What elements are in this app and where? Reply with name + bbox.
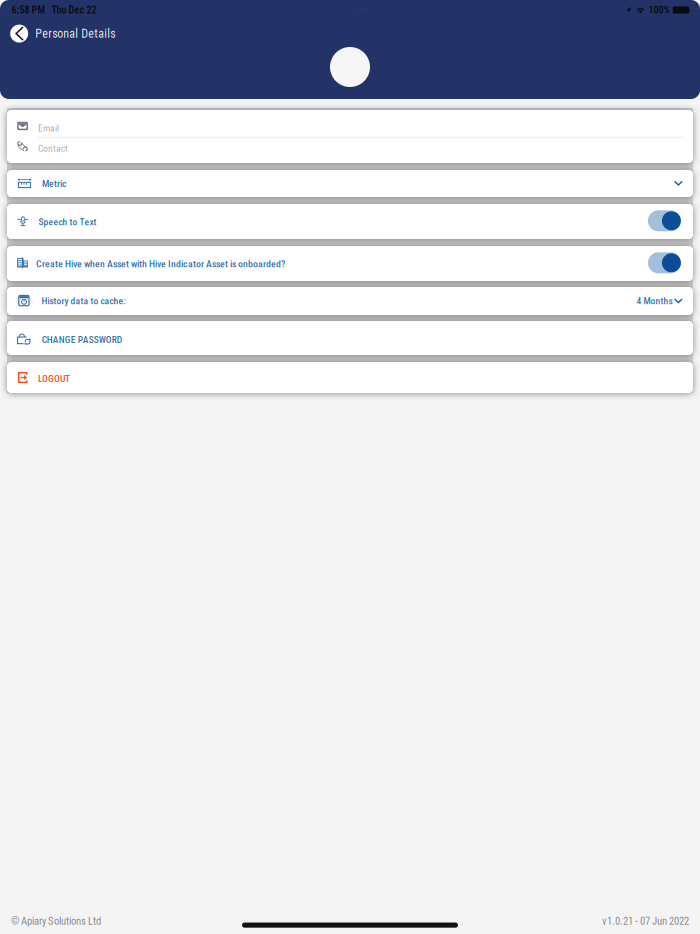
staticText: v1.0.21 - 07 Jun 2022 — [602, 915, 689, 927]
staticText: CHANGE PASSWORD — [42, 334, 122, 345]
button[interactable]: LOGOUT — [0, 0, 686, 31]
button[interactable]: Metric — [0, 0, 686, 27]
staticText: 4 Months — [636, 295, 672, 307]
button[interactable]: Speech to Text — [648, 210, 681, 231]
staticText: Speech to Text — [39, 216, 97, 228]
staticText: © Apiary Solutions Ltd — [11, 915, 101, 927]
button[interactable]: History data to cache: — [0, 0, 686, 28]
staticText: 6:58 PM — [11, 4, 45, 16]
button[interactable]: Personal Details — [0, 23, 340, 45]
staticText: Thu Dec 22 — [51, 4, 96, 16]
staticText: Email — [38, 123, 59, 134]
staticText: Personal Details — [35, 27, 115, 41]
staticText: Contact — [38, 143, 68, 154]
staticText: Create Hive when Asset with Hive Indicat… — [36, 258, 285, 270]
staticText: LOGOUT — [38, 373, 70, 384]
staticText: Metric — [42, 178, 66, 189]
button[interactable]: CHANGE PASSWORD — [0, 0, 686, 34]
staticText: History data to cache: — [41, 295, 125, 307]
staticText: 100% — [648, 4, 669, 16]
button[interactable]: Create Hive when Asset with Hive Indicat… — [648, 252, 681, 273]
